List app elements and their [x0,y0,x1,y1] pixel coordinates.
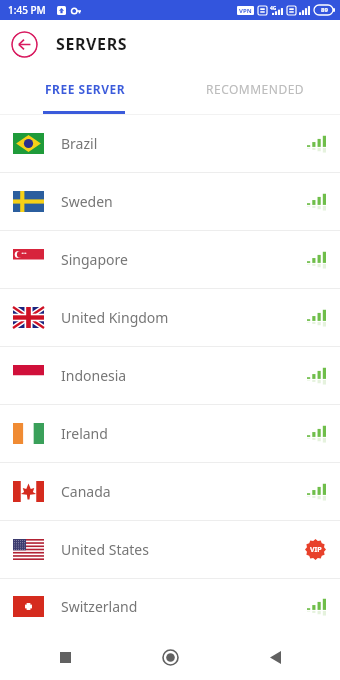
staticText: United Kingdom [61,308,169,327]
button[interactable]: RECOMMENDED [170,68,340,110]
staticText: Brazil [61,134,98,153]
button[interactable]: Switzerland [0,579,340,634]
button[interactable]: United States [0,521,340,578]
button[interactable]: Brazil [0,115,340,172]
button[interactable]: Ireland [0,405,340,462]
staticText: SERVERS [56,33,128,55]
button[interactable]: Singapore [0,231,340,288]
button[interactable]: Canada [0,463,340,520]
staticText: Switzerland [61,597,138,616]
staticText: Indonesia [61,366,127,385]
staticText: Canada [61,482,111,501]
button[interactable]: Back [11,31,38,58]
staticText: 89 [321,6,328,14]
staticText: Sweden [61,192,113,211]
button[interactable]: Sweden [0,173,340,230]
staticText: FREE SERVER [45,81,126,97]
button[interactable]: Indonesia [0,347,340,404]
staticText: RECOMMENDED [206,81,305,97]
button[interactable]: United Kingdom [0,289,340,346]
button[interactable]: FREE SERVER [0,68,170,110]
staticText: VIP [310,545,322,555]
button[interactable]: Home [153,640,187,674]
button[interactable]: Recents [48,640,82,674]
staticText: VPN [239,7,252,15]
button[interactable]: Back [258,640,292,674]
staticText: 1:45 PM [8,3,46,17]
staticText: Singapore [61,250,128,269]
staticText: Ireland [61,424,108,443]
staticText: 4G [270,5,277,12]
staticText: United States [61,540,149,559]
